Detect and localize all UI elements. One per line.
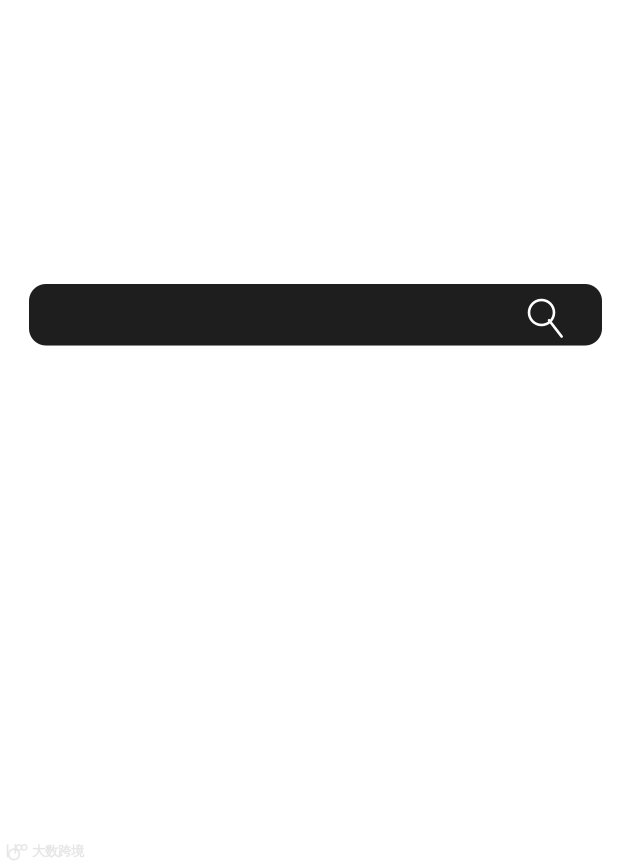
button[interactable]: Search (29, 284, 602, 345)
staticText: 大数跨境 (32, 843, 84, 859)
